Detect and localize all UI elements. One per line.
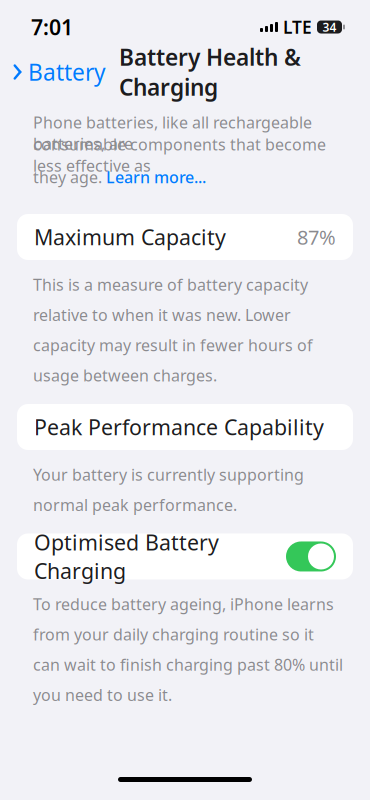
staticText: Maximum Capacity — [34, 223, 226, 251]
staticText: Battery — [28, 57, 106, 87]
staticText: Phone batteries, like all rechargeable b… — [33, 112, 312, 154]
staticText: Learn more... — [106, 166, 206, 188]
staticText: This is a measure of battery capacity re… — [33, 274, 313, 386]
staticText: Peak Performance Capability — [34, 413, 324, 441]
staticText: consumable components that become less e… — [33, 134, 326, 176]
staticText: Optimised Battery Charging — [34, 528, 219, 585]
button[interactable]: Battery — [12, 51, 106, 93]
staticText: 7:01 — [31, 13, 73, 41]
staticText: Battery Health & Charging — [119, 42, 301, 102]
staticText: LTE — [283, 15, 312, 38]
staticText: Your battery is currently supporting nor… — [33, 464, 304, 515]
staticText: To reduce battery ageing, iPhone learns … — [33, 593, 343, 705]
staticText: they age. — [33, 166, 106, 188]
button[interactable]: Maximum Capacity — [17, 214, 353, 260]
button[interactable]: Peak Performance Capability — [17, 404, 353, 450]
staticText: 34 — [322, 19, 336, 35]
button[interactable]: Optimised Battery Charging — [17, 533, 353, 579]
staticText: 87% — [297, 224, 336, 250]
button[interactable]: Learn more... — [106, 166, 206, 188]
